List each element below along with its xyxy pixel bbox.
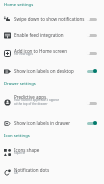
- button[interactable]: Icons shape: [0, 142, 104, 162]
- staticText: Show icon labels on desktop: [14, 68, 74, 74]
- staticText: Add icon to Home screen: [14, 48, 68, 54]
- staticText: Predictive apps: [14, 94, 47, 100]
- staticText: Squircle: [14, 151, 26, 155]
- button[interactable]: Off: [86, 98, 104, 108]
- button[interactable]: On: [86, 66, 104, 76]
- button[interactable]: Off: [86, 14, 104, 24]
- button[interactable]: Predictive apps: [0, 90, 104, 115]
- button[interactable]: On: [86, 118, 104, 128]
- staticText: For new apps: [14, 52, 33, 56]
- button[interactable]: Show icon labels on desktop: [0, 63, 104, 79]
- staticText: Enable feed integration: [14, 32, 64, 38]
- staticText: Icon settings: [4, 133, 30, 139]
- staticText: On: [14, 171, 19, 175]
- staticText: Drawer settings: [4, 81, 36, 87]
- staticText: Your favorite apps won't appear at the t…: [14, 98, 59, 106]
- staticText: Icons shape: [14, 147, 40, 153]
- staticText: Home settings: [4, 2, 34, 8]
- button[interactable]: Add icon to Home screen: [0, 43, 104, 63]
- button[interactable]: Show icon labels in drawer: [0, 115, 104, 131]
- staticText: Show icon labels in drawer: [14, 120, 71, 126]
- button[interactable]: Off: [86, 30, 104, 40]
- button[interactable]: Enable feed integration: [0, 27, 104, 43]
- staticText: Swipe down to show notifications: [14, 16, 85, 22]
- button[interactable]: Swipe down to show notifications: [0, 11, 104, 27]
- button[interactable]: Notification dots: [0, 162, 104, 182]
- staticText: Notification dots: [14, 167, 50, 173]
- button[interactable]: Off: [86, 48, 104, 58]
